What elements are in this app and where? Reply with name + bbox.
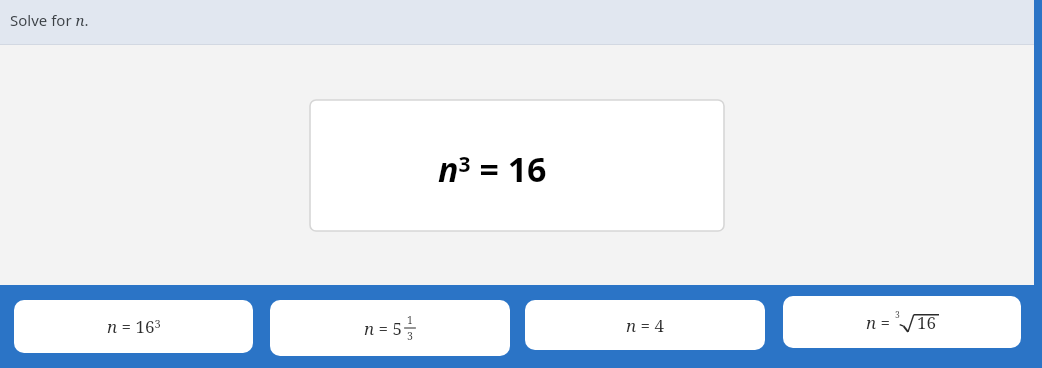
button[interactable]: Answer n equals 5 and one third: [270, 300, 510, 356]
button[interactable]: Answer n equals 4: [525, 300, 765, 350]
staticText: 16: [917, 311, 937, 334]
staticText: 3: [407, 329, 413, 343]
staticText: Solve for n.: [10, 10, 89, 30]
staticText: 3: [895, 309, 900, 321]
staticText: n =: [866, 311, 895, 334]
button[interactable]: Answer n equals cube root of 16: [783, 296, 1021, 348]
staticText: n3 = 16: [438, 146, 547, 192]
staticText: n = 5: [364, 317, 403, 340]
staticText: 1: [407, 313, 413, 327]
button[interactable]: Answer n equals 16 cubed: [14, 300, 253, 353]
staticText: n = 163: [107, 315, 161, 338]
staticText: n = 4: [626, 314, 665, 337]
